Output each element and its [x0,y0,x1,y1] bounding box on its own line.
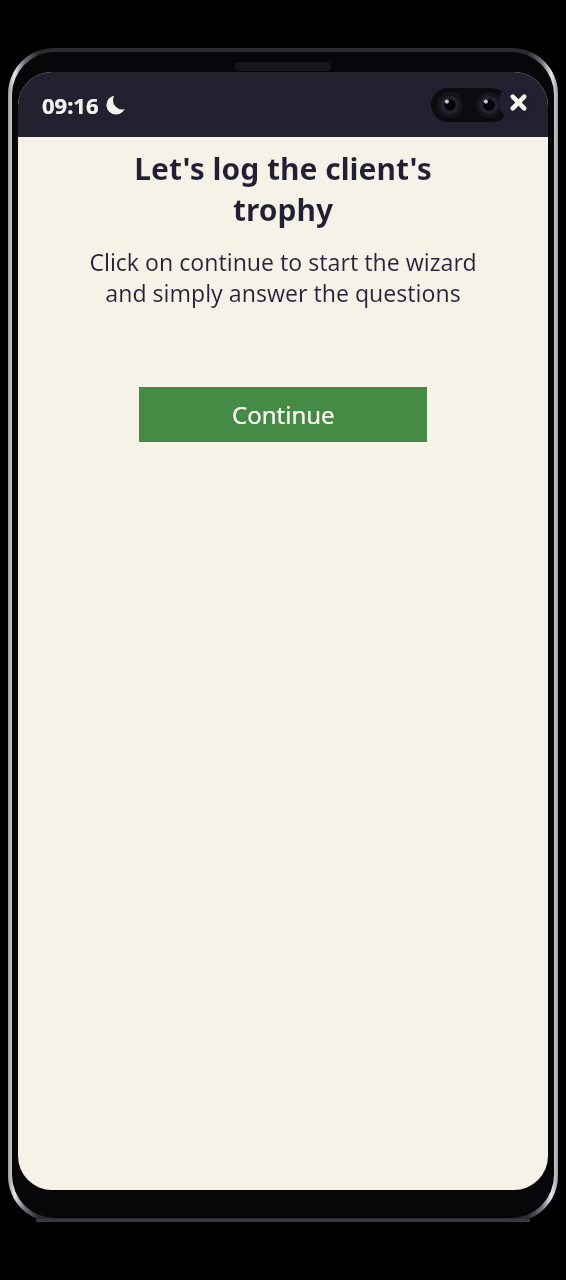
button[interactable]: Continue [139,387,427,442]
staticText: Let's log the client's trophy [44,148,522,230]
staticText: Click on continue to start the wizard an… [32,246,534,309]
button[interactable]: Close [499,83,537,121]
staticText: 09:16 [42,90,99,120]
staticText: Continue [232,398,335,431]
